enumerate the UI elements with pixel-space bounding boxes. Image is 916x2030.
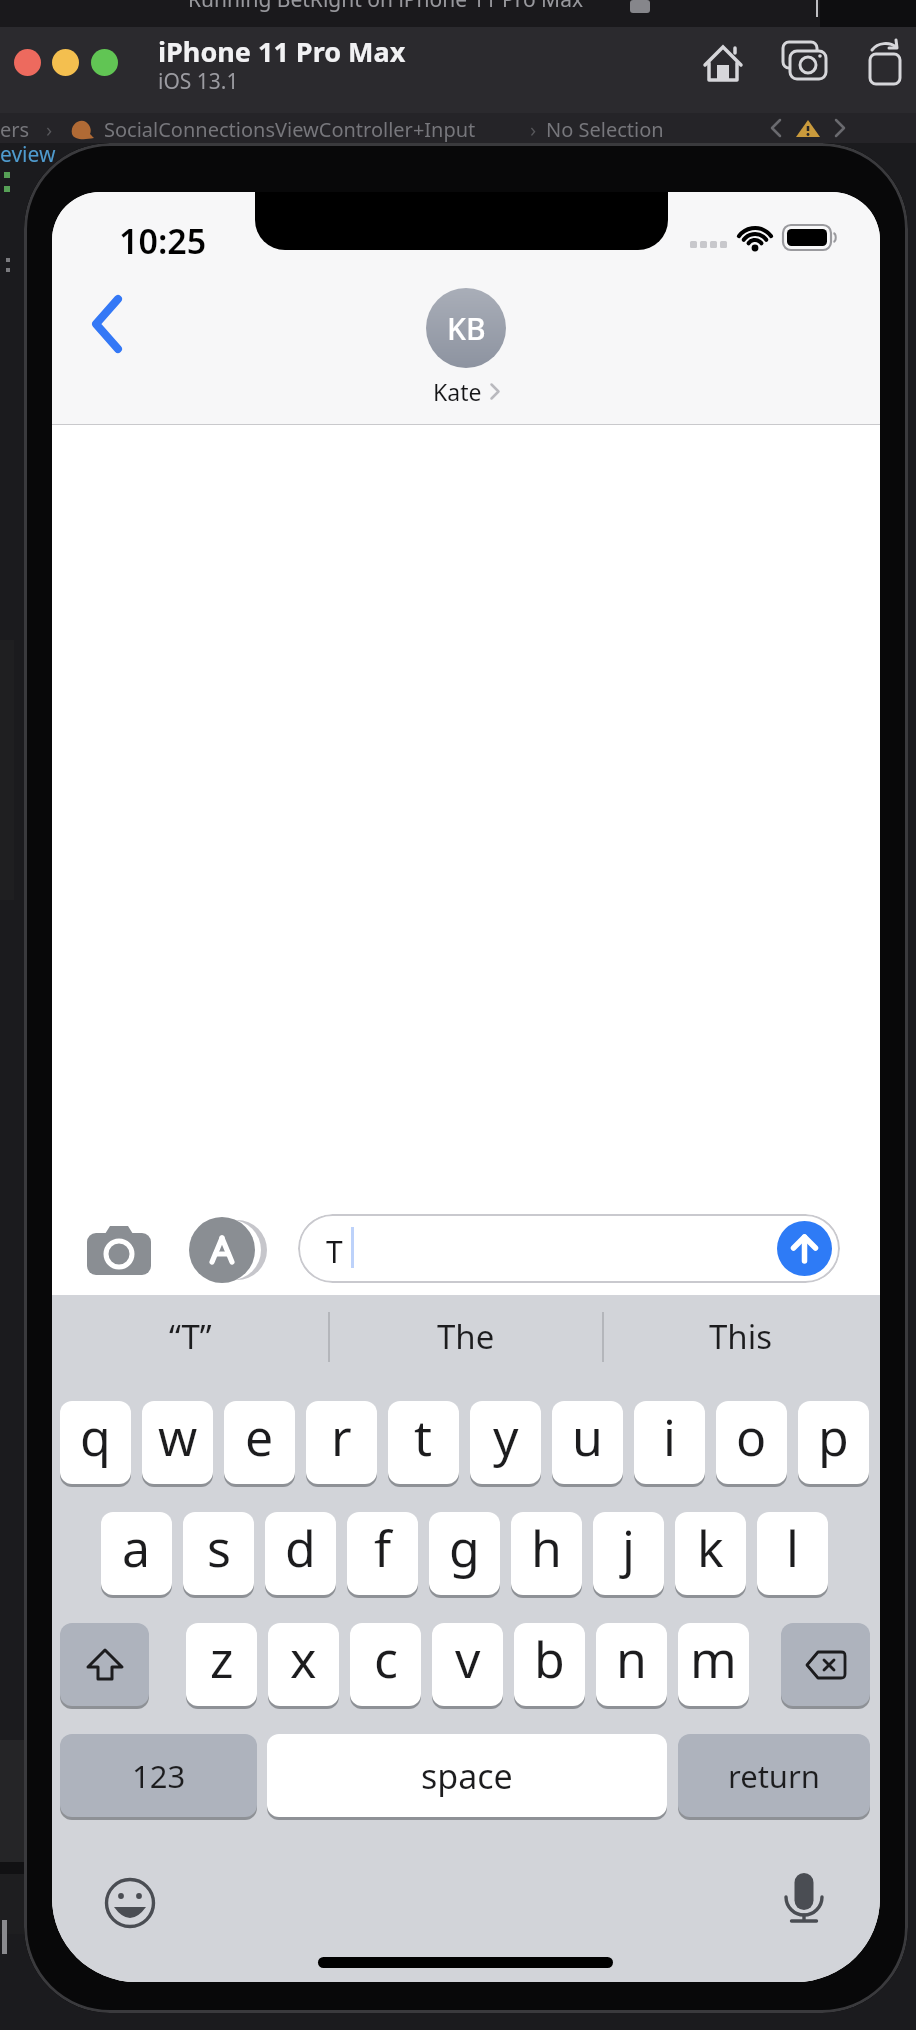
button[interactable]: z: [186, 1623, 257, 1706]
button[interactable]: k: [675, 1512, 746, 1595]
button[interactable]: space: [267, 1734, 667, 1817]
staticText: ers: [0, 116, 30, 143]
button[interactable]: [87, 1225, 151, 1275]
button[interactable]: 123: [60, 1734, 257, 1817]
button[interactable]: p: [798, 1401, 869, 1484]
button[interactable]: a: [101, 1512, 172, 1595]
button[interactable]: [781, 1623, 870, 1706]
button[interactable]: h: [511, 1512, 582, 1595]
staticText: q: [80, 1403, 111, 1471]
button[interactable]: [14, 49, 41, 76]
button[interactable]: “T”: [72, 1310, 308, 1362]
button[interactable]: i: [634, 1401, 705, 1484]
staticText: “T”: [169, 1314, 212, 1359]
staticText: z: [210, 1625, 234, 1693]
button[interactable]: s: [183, 1512, 254, 1595]
button[interactable]: x: [268, 1623, 339, 1706]
staticText: g: [449, 1514, 480, 1582]
staticText: p: [818, 1403, 849, 1471]
button[interactable]: [52, 49, 79, 76]
button[interactable]: m: [678, 1623, 749, 1706]
staticText: d: [285, 1514, 316, 1582]
button[interactable]: [92, 296, 128, 352]
staticText: This: [709, 1314, 773, 1359]
button[interactable]: [189, 1217, 273, 1283]
button[interactable]: w: [142, 1401, 213, 1484]
staticText: x: [290, 1625, 317, 1693]
staticText: y: [493, 1403, 519, 1471]
staticText: s: [207, 1514, 231, 1582]
button[interactable]: [783, 42, 829, 84]
button[interactable]: [60, 1623, 149, 1706]
staticText: 123: [132, 1755, 186, 1797]
button[interactable]: j: [593, 1512, 664, 1595]
staticText: SocialConnectionsViewController+Input: [104, 116, 476, 143]
button[interactable]: [783, 1871, 825, 1929]
staticText: The: [437, 1314, 495, 1359]
button[interactable]: n: [596, 1623, 667, 1706]
staticText: r: [331, 1403, 352, 1471]
staticText: u: [572, 1403, 603, 1471]
staticText: e: [245, 1403, 274, 1471]
staticText: w: [158, 1403, 198, 1471]
button[interactable]: e: [224, 1401, 295, 1484]
button[interactable]: This: [623, 1310, 859, 1362]
staticText: b: [534, 1625, 565, 1693]
button[interactable]: [866, 40, 910, 86]
staticText: k: [697, 1514, 724, 1582]
button[interactable]: [777, 1221, 832, 1276]
staticText: f: [374, 1514, 392, 1582]
staticText: eview: [0, 140, 56, 169]
staticText: ›: [530, 116, 537, 143]
button[interactable]: r: [306, 1401, 377, 1484]
staticText: No Selection: [546, 116, 664, 143]
staticText: return: [728, 1755, 820, 1797]
button[interactable]: [703, 43, 743, 83]
staticText: o: [736, 1403, 767, 1471]
staticText: c: [374, 1625, 398, 1693]
button[interactable]: d: [265, 1512, 336, 1595]
staticText: iPhone 11 Pro Max: [158, 33, 406, 70]
staticText: T: [326, 1231, 343, 1272]
staticText: iOS 13.1: [158, 67, 239, 96]
button[interactable]: The: [348, 1310, 584, 1362]
staticText: m: [690, 1625, 737, 1693]
staticText: space: [421, 1753, 513, 1799]
button[interactable]: y: [470, 1401, 541, 1484]
button[interactable]: Kate: [402, 376, 530, 406]
staticText: n: [616, 1625, 647, 1693]
staticText: l: [786, 1514, 799, 1582]
button[interactable]: v: [432, 1623, 503, 1706]
staticText: v: [455, 1625, 481, 1693]
staticText: 10:25: [119, 218, 207, 258]
button[interactable]: f: [347, 1512, 418, 1595]
button[interactable]: return: [678, 1734, 870, 1817]
button[interactable]: KB: [426, 288, 506, 368]
staticText: KB: [447, 308, 486, 349]
staticText: j: [622, 1514, 635, 1582]
button[interactable]: u: [552, 1401, 623, 1484]
staticText: ›: [46, 116, 53, 143]
button[interactable]: q: [60, 1401, 131, 1484]
staticText: Kate: [433, 376, 482, 406]
staticText: t: [414, 1403, 433, 1471]
staticText: h: [531, 1514, 562, 1582]
button[interactable]: l: [757, 1512, 828, 1595]
staticText: Running BetRight on iPhone 11 Pro Max: [188, 0, 584, 12]
button[interactable]: t: [388, 1401, 459, 1484]
button[interactable]: g: [429, 1512, 500, 1595]
staticText: a: [122, 1514, 151, 1582]
staticText: i: [663, 1403, 676, 1471]
button[interactable]: [91, 49, 118, 76]
button[interactable]: b: [514, 1623, 585, 1706]
button[interactable]: [104, 1877, 156, 1929]
button[interactable]: c: [350, 1623, 421, 1706]
button[interactable]: T: [298, 1214, 840, 1283]
button[interactable]: o: [716, 1401, 787, 1484]
